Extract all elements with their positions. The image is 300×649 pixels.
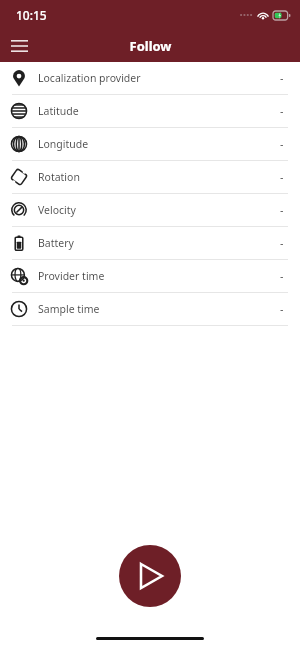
staticText: - bbox=[280, 104, 284, 118]
staticText: Localization provider bbox=[38, 71, 141, 85]
staticText: Latitude bbox=[38, 104, 79, 118]
button[interactable]: Latitude bbox=[0, 95, 300, 127]
button[interactable]: Velocity bbox=[0, 194, 300, 226]
staticText: - bbox=[280, 170, 284, 184]
staticText: Sample time bbox=[38, 302, 100, 316]
button[interactable]: Sample time bbox=[0, 293, 300, 325]
button[interactable]: Open navigation menu bbox=[0, 30, 38, 62]
staticText: - bbox=[280, 302, 284, 316]
staticText: - bbox=[280, 236, 284, 250]
button[interactable]: Localization provider bbox=[0, 62, 300, 94]
staticText: 10:15 bbox=[16, 7, 47, 23]
staticText: Follow bbox=[129, 37, 172, 55]
button[interactable]: Rotation bbox=[0, 161, 300, 193]
staticText: Longitude bbox=[38, 137, 89, 151]
staticText: Provider time bbox=[38, 269, 105, 283]
staticText: - bbox=[280, 137, 284, 151]
button[interactable]: Start following bbox=[119, 545, 181, 607]
button[interactable]: Longitude bbox=[0, 128, 300, 160]
staticText: Velocity bbox=[38, 203, 76, 217]
staticText: Battery bbox=[38, 236, 74, 250]
staticText: - bbox=[280, 71, 284, 85]
button[interactable]: Battery bbox=[0, 227, 300, 259]
staticText: Rotation bbox=[38, 170, 80, 184]
staticText: - bbox=[280, 269, 284, 283]
staticText: - bbox=[280, 203, 284, 217]
button[interactable]: Provider time bbox=[0, 260, 300, 292]
